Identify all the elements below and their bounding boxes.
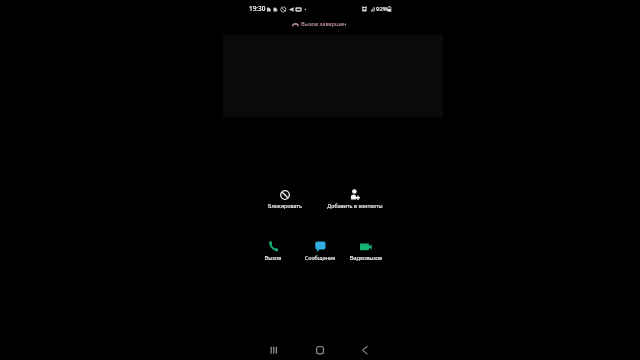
staticText: Вызов xyxy=(256,254,290,261)
staticText: 19:30 xyxy=(249,4,266,13)
other: Блокировать xyxy=(280,190,290,200)
button[interactable]: Вызов завершен xyxy=(289,19,351,29)
staticText: Блокировать xyxy=(263,202,307,209)
button[interactable]: Назад xyxy=(354,339,376,360)
other: Вызов xyxy=(268,241,279,252)
button[interactable]: Видеовызов xyxy=(348,237,384,262)
button[interactable]: Домой xyxy=(309,339,331,360)
button[interactable]: Недавние xyxy=(263,339,285,360)
button[interactable]: Добавить в контакты xyxy=(324,185,386,210)
other: Видеовызов xyxy=(360,241,372,253)
button[interactable]: Блокировать xyxy=(263,186,307,210)
button[interactable]: Сообщение xyxy=(302,237,338,262)
staticText: Видеовызов xyxy=(348,254,384,261)
staticText: Добавить в контакты xyxy=(324,202,386,209)
button[interactable]: Вызов xyxy=(256,237,290,262)
staticText: Вызов завершен xyxy=(301,20,347,28)
staticText: Сообщение xyxy=(302,254,338,261)
staticText: 92% xyxy=(376,5,388,13)
other: Добавить в контакты xyxy=(349,189,361,201)
other: Сообщение xyxy=(315,241,326,252)
